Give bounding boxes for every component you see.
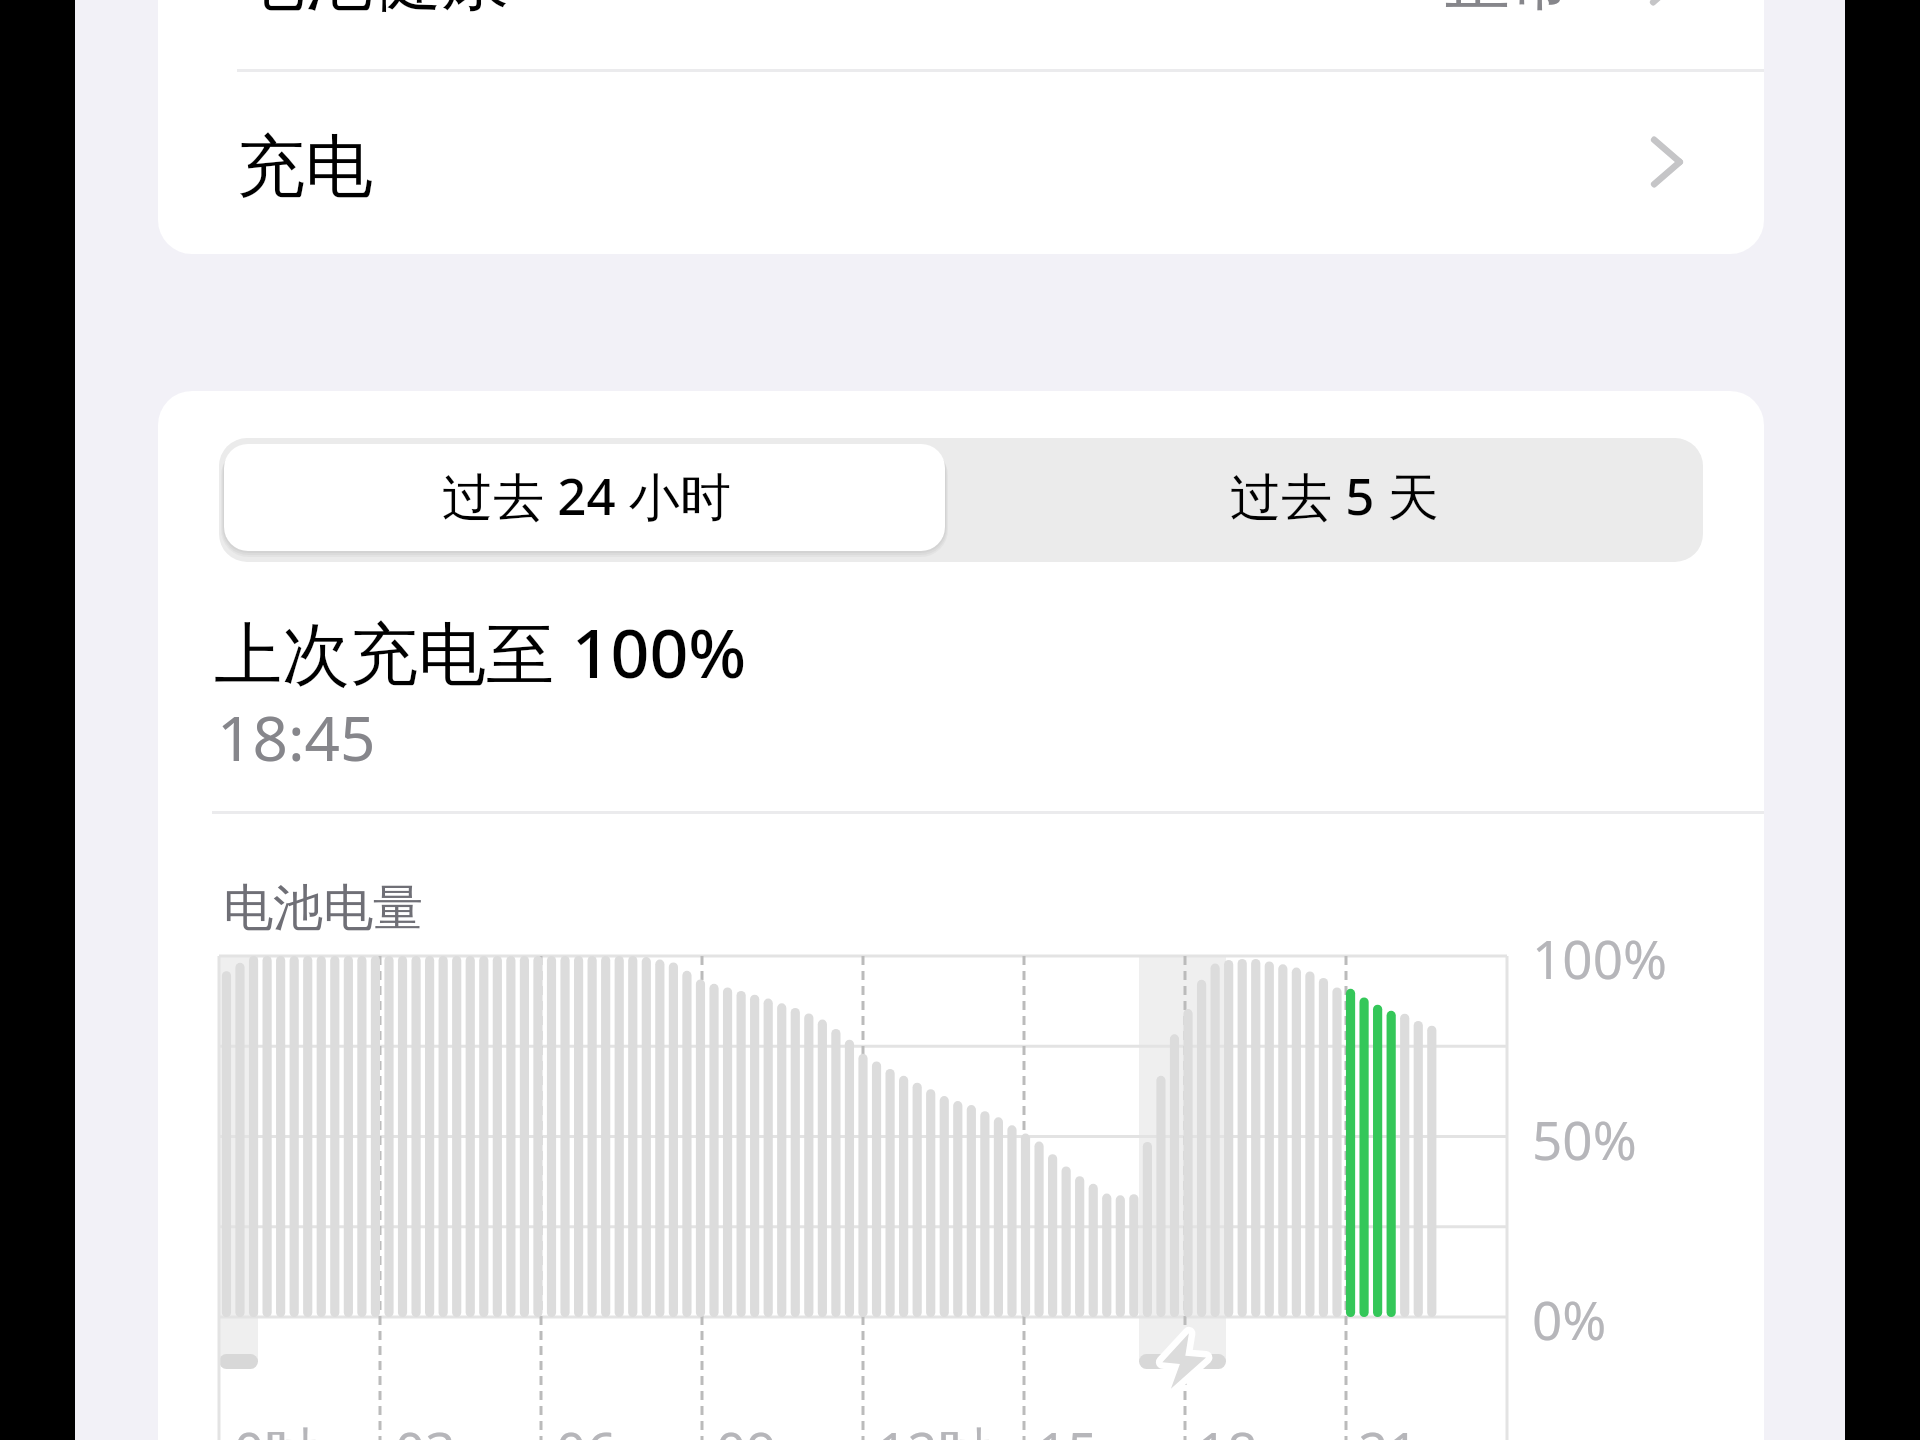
staticText: 18 [1197,1414,1258,1440]
staticText: 100% [1532,922,1667,994]
button[interactable]: 充电 [158,72,1764,254]
staticText: 50% [1532,1103,1637,1175]
staticText: 0时 [234,1414,318,1440]
staticText: 12时 [877,1414,991,1440]
staticText: 18:45 [217,695,376,779]
other: Open charging [1651,137,1682,187]
staticText: 上次充电至 100% [214,605,747,698]
staticText: 正常 [1445,0,1575,22]
staticText: 15 [1037,1414,1098,1440]
staticText: 09 [716,1414,777,1440]
staticText: 过去 24 小时 [442,460,731,530]
staticText: 06 [556,1414,617,1440]
button[interactable]: 电池健康 [158,0,1764,34]
staticText: 电池健康 [237,0,509,24]
staticText: 过去 5 天 [1230,460,1439,530]
other: Open battery health [1650,0,1681,5]
staticText: 电池电量 [223,877,423,940]
button[interactable]: 过去 5 天 [950,438,1703,562]
staticText: 21 [1358,1414,1419,1440]
staticText: 充电 [237,125,373,211]
staticText: 03 [395,1414,456,1440]
button[interactable]: 过去 24 小时 [224,444,945,551]
staticText: 0% [1532,1283,1607,1355]
